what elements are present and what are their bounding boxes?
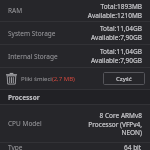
staticText: Available:7,90GB — [90, 33, 142, 42]
staticText: CPU Model — [8, 119, 42, 128]
button[interactable]: RAM — [0, 0, 150, 21]
button[interactable]: Czyść — [103, 72, 145, 85]
staticText: Pliki śmieci(2,7 MB) — [21, 75, 75, 83]
button[interactable]: System Storage — [0, 22, 150, 44]
button[interactable]: CPU Model — [0, 105, 150, 142]
staticText: Total:11,04GB — [99, 24, 142, 33]
button[interactable]: Internal Storage — [0, 45, 150, 67]
staticText: 8 Core ARMv8 Processor (VFPv4, NEON) — [80, 111, 142, 137]
button[interactable]: Pliki śmieci(2,7 MB) — [5, 70, 75, 87]
staticText: System Storage — [8, 29, 56, 38]
staticText: Czyść — [116, 75, 132, 83]
staticText: Processor — [8, 93, 40, 102]
staticText: Total:1893MB — [100, 2, 142, 11]
staticText: Available:1210MB — [87, 11, 142, 20]
button[interactable]: Type — [0, 143, 150, 150]
staticText: Available:7,90GB — [90, 56, 142, 65]
staticText: Internal Storage — [8, 52, 58, 61]
staticText: Total:11,04GB — [99, 47, 142, 56]
staticText: Type — [8, 143, 23, 150]
staticText: RAM — [8, 6, 23, 15]
staticText: 64 bit — [124, 143, 142, 150]
